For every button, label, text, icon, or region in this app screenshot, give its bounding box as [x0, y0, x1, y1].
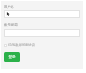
button[interactable]	[4, 29, 80, 37]
staticText: 用户名	[4, 5, 14, 9]
button[interactable]	[4, 10, 80, 18]
staticText: 已阅读并同意协议	[8, 43, 36, 47]
button[interactable]: 已阅读并同意协议	[4, 43, 36, 47]
staticText: 账号邮箱	[4, 23, 18, 27]
button[interactable]: 登录	[4, 52, 20, 62]
staticText: 登录	[8, 55, 16, 60]
